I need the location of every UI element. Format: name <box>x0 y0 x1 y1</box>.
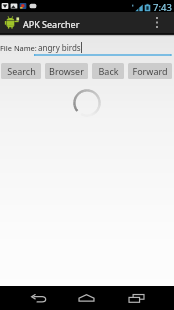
staticText: Browser <box>49 65 84 77</box>
button[interactable]: Recent apps <box>114 286 158 310</box>
staticText: Forward <box>132 65 168 77</box>
staticText: Search <box>7 65 36 77</box>
staticText: APK Searcher <box>23 18 80 30</box>
button[interactable]: Back <box>92 63 124 79</box>
staticText: 7:43 <box>153 1 172 13</box>
button[interactable]: Forward <box>128 63 172 79</box>
staticText: angry birds <box>38 42 81 53</box>
staticText: Back <box>98 65 119 77</box>
button[interactable]: Search <box>1 63 41 79</box>
button[interactable]: angry birds <box>34 41 172 57</box>
button[interactable]: Browser <box>45 63 88 79</box>
staticText: File Name: <box>0 43 37 53</box>
button[interactable]: Home <box>64 286 108 310</box>
button[interactable]: Back <box>17 286 61 310</box>
button[interactable]: More options <box>146 12 168 33</box>
